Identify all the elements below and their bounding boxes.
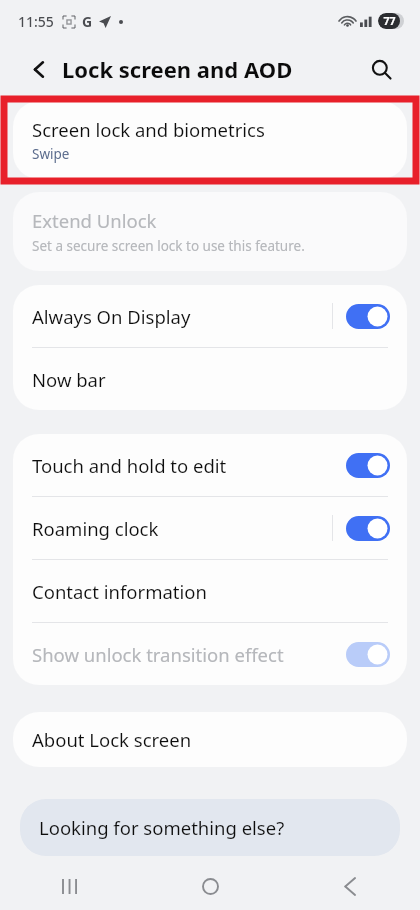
button[interactable]: Back xyxy=(22,52,56,86)
staticText: Set a secure screen lock to use this fea… xyxy=(32,237,305,255)
staticText: About Lock screen xyxy=(32,727,192,752)
button[interactable]: Toggle xyxy=(346,516,390,541)
button[interactable]: Home xyxy=(140,862,280,910)
button[interactable]: Search xyxy=(364,52,398,86)
button[interactable]: Touch and hold to edit xyxy=(13,434,407,496)
button[interactable]: Extend Unlock xyxy=(13,192,407,271)
button[interactable]: Always On Display xyxy=(13,285,407,347)
staticText: Looking for something else? xyxy=(39,815,285,840)
staticText: Touch and hold to edit xyxy=(32,453,346,478)
staticText: Screen lock and biometrics xyxy=(32,117,265,142)
staticText: G xyxy=(82,12,93,31)
staticText: 11:55 xyxy=(18,12,54,31)
staticText: Roaming clock xyxy=(32,516,332,541)
staticText: Now bar xyxy=(32,367,390,392)
staticText: Lock screen and AOD xyxy=(62,54,293,84)
button[interactable]: Contact information xyxy=(13,560,407,622)
staticText: 77 xyxy=(383,14,396,28)
button[interactable]: Back xyxy=(280,862,420,910)
staticText: Contact information xyxy=(32,579,390,604)
button[interactable]: Recents xyxy=(0,862,140,910)
staticText: Swipe xyxy=(32,145,70,163)
button[interactable]: Screen lock and biometrics xyxy=(13,101,407,179)
staticText: Show unlock transition effect xyxy=(32,642,346,667)
button[interactable]: About Lock screen xyxy=(13,712,407,767)
button[interactable]: Looking for something else? xyxy=(20,799,400,856)
staticText: Always On Display xyxy=(32,304,332,329)
button[interactable]: Now bar xyxy=(13,348,407,410)
button[interactable]: Toggle xyxy=(346,304,390,329)
button[interactable]: Toggle xyxy=(346,453,390,478)
button[interactable]: Toggle xyxy=(346,642,390,667)
button[interactable]: Roaming clock xyxy=(13,497,407,559)
button[interactable]: Show unlock transition effect xyxy=(13,623,407,685)
staticText: Extend Unlock xyxy=(32,208,157,233)
